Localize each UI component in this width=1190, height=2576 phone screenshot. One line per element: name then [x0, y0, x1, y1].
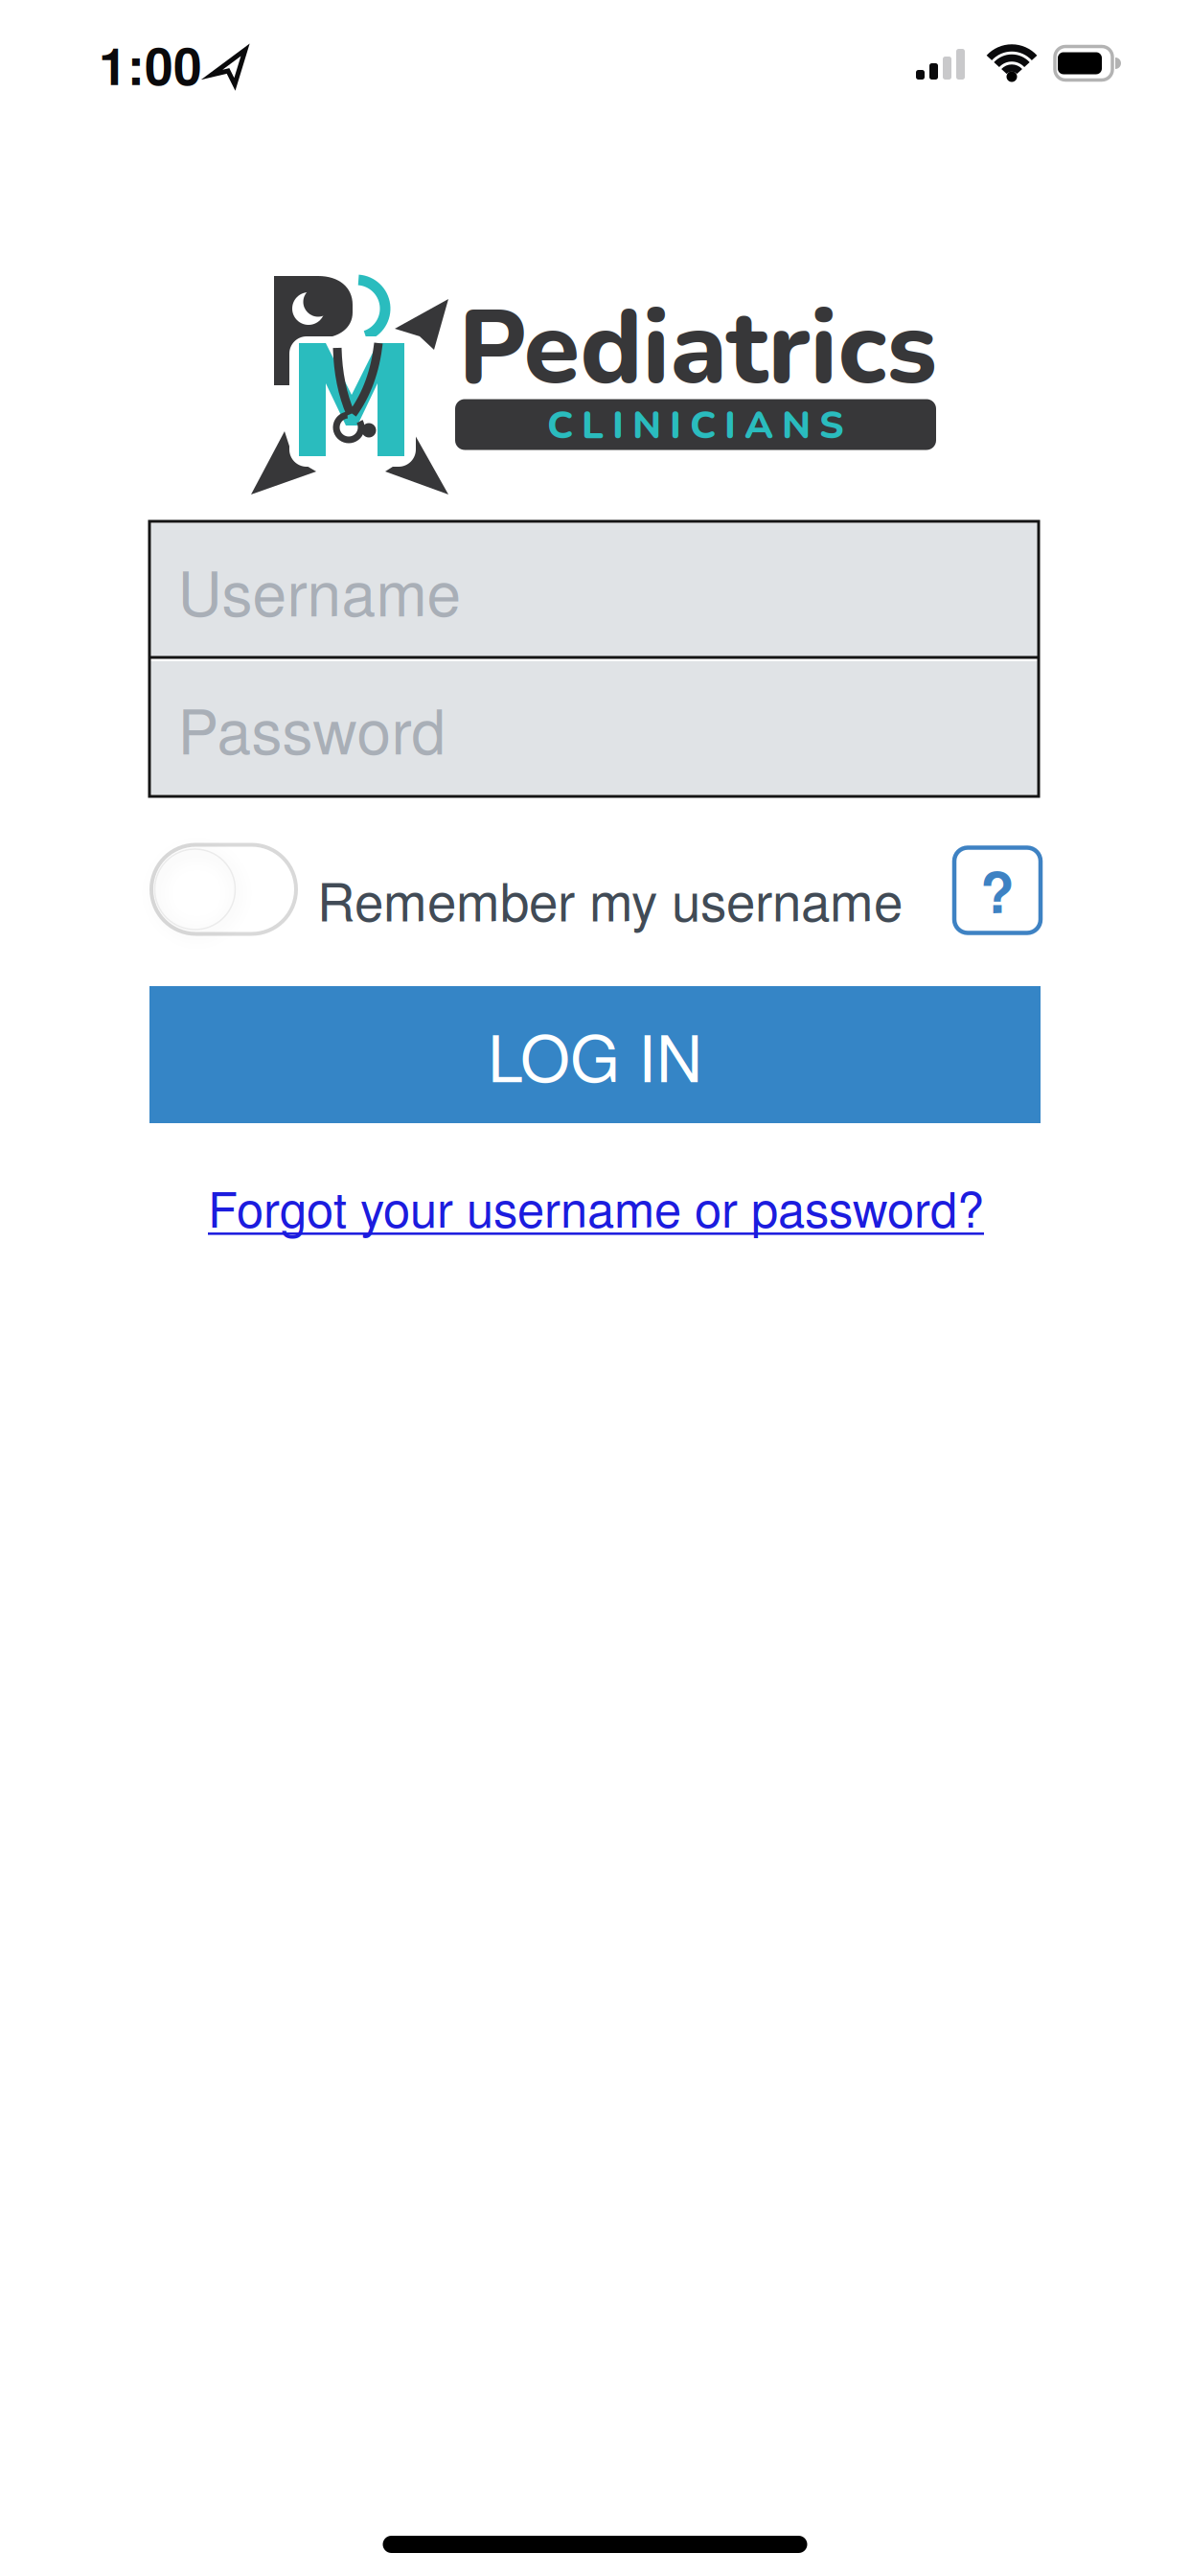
button[interactable]: Username [151, 523, 1037, 656]
staticText: Username [178, 546, 461, 634]
button[interactable]: Help [954, 848, 1041, 933]
staticText: Forgot your username or password? [208, 1172, 984, 1241]
staticText: LOG IN [488, 1009, 702, 1100]
staticText: Pediatrics [458, 279, 937, 419]
button[interactable]: Remember my username [151, 845, 296, 934]
staticText: Password [178, 684, 446, 772]
staticText: CLINICIANS [547, 399, 844, 452]
staticText: ? [980, 850, 1015, 931]
button[interactable]: LOG IN [149, 986, 1041, 1123]
staticText: 1:00 [99, 28, 202, 101]
button[interactable]: Password [151, 661, 1037, 794]
staticText: Remember my username [317, 861, 903, 936]
button[interactable]: Forgot your username or password? [208, 1172, 984, 1241]
